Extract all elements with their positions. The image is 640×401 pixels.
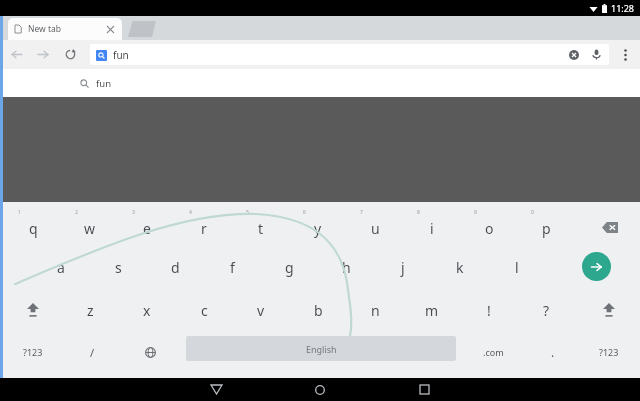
button[interactable]: .com [467, 332, 519, 372]
staticText: k [456, 258, 464, 277]
button[interactable]: 3 [121, 202, 173, 246]
staticText: d [171, 258, 180, 277]
staticText: 5 [246, 209, 249, 216]
button[interactable]: Shift [7, 288, 59, 332]
button[interactable]: n [349, 288, 401, 332]
staticText: 11:28 [611, 2, 635, 14]
staticText: t [258, 219, 264, 238]
button[interactable]: b [292, 288, 344, 332]
staticText: m [425, 301, 439, 320]
staticText: x [143, 301, 151, 320]
button[interactable]: 9 [463, 202, 515, 246]
button[interactable]: fun [90, 44, 609, 65]
staticText: p [542, 219, 551, 238]
button[interactable]: j [377, 246, 429, 288]
button[interactable]: x [121, 288, 173, 332]
staticText: 1 [18, 209, 21, 216]
staticText: English [306, 343, 337, 355]
button[interactable]: ? [520, 288, 572, 332]
button[interactable]: ! [463, 288, 515, 332]
staticText: ?123 [599, 346, 619, 358]
staticText: 9 [474, 209, 477, 216]
staticText: fun [96, 77, 112, 90]
staticText: .com [483, 346, 504, 358]
staticText: 7 [360, 209, 363, 216]
staticText: 3 [132, 209, 135, 216]
staticText: a [57, 258, 65, 277]
button[interactable]: h [320, 246, 372, 288]
button[interactable]: . [527, 332, 579, 372]
staticText: 4 [189, 209, 192, 216]
staticText: ?123 [23, 346, 43, 358]
button[interactable]: g [263, 246, 315, 288]
button[interactable]: Reload [62, 46, 79, 63]
button[interactable]: l [491, 246, 543, 288]
button[interactable]: / [66, 332, 118, 372]
button[interactable]: Back [184, 378, 248, 401]
button[interactable]: Back [8, 46, 25, 63]
staticText: ! [487, 301, 491, 320]
button[interactable]: 7 [349, 202, 401, 246]
button[interactable]: fun [0, 69, 640, 97]
staticText: z [87, 301, 94, 320]
button[interactable]: c [178, 288, 230, 332]
button[interactable]: 6 [292, 202, 344, 246]
staticText: n [371, 301, 380, 320]
button[interactable]: m [406, 288, 458, 332]
button[interactable]: 5 [235, 202, 287, 246]
staticText: l [515, 258, 519, 277]
button[interactable]: ?123 [583, 332, 635, 372]
staticText: 2 [75, 209, 78, 216]
staticText: w [84, 219, 96, 238]
staticText: 8 [417, 209, 420, 216]
button[interactable]: Change language [124, 332, 176, 372]
staticText: g [285, 258, 294, 277]
button[interactable]: k [434, 246, 486, 288]
button[interactable]: 0 [520, 202, 572, 246]
staticText: y [314, 219, 322, 238]
staticText: fun [113, 48, 129, 62]
staticText: q [29, 219, 38, 238]
staticText: 0 [531, 209, 534, 216]
staticText: h [342, 258, 351, 277]
button[interactable]: z [64, 288, 116, 332]
staticText: s [115, 258, 122, 277]
button[interactable]: a [35, 246, 87, 288]
button[interactable]: English [186, 336, 456, 361]
staticText: / [90, 345, 95, 360]
button[interactable]: Forward [35, 46, 52, 63]
button[interactable]: Clear [566, 47, 581, 62]
button[interactable]: ?123 [7, 332, 59, 372]
button[interactable]: Close tab [105, 24, 116, 35]
button[interactable]: Home [288, 378, 352, 401]
staticText: 6 [303, 209, 306, 216]
button[interactable]: Enter [582, 252, 611, 281]
staticText: New tab [28, 23, 62, 35]
button[interactable]: d [149, 246, 201, 288]
staticText: b [314, 301, 323, 320]
staticText: e [143, 219, 151, 238]
button[interactable]: 2 [64, 202, 116, 246]
staticText: c [201, 301, 208, 320]
button[interactable]: 8 [406, 202, 458, 246]
button[interactable]: Shift [583, 288, 635, 332]
button[interactable]: More options [616, 46, 634, 64]
button[interactable]: 1 [7, 202, 59, 246]
staticText: r [201, 219, 207, 238]
button[interactable]: New tab [8, 18, 122, 40]
staticText: i [430, 219, 434, 238]
button[interactable]: New tab [128, 21, 156, 37]
button[interactable]: Recent apps [392, 378, 456, 401]
button[interactable]: v [235, 288, 287, 332]
staticText: u [371, 219, 380, 238]
staticText: . [551, 344, 555, 360]
button[interactable]: s [92, 246, 144, 288]
button[interactable]: 4 [178, 202, 230, 246]
staticText: o [485, 219, 494, 238]
staticText: f [230, 258, 235, 277]
button[interactable]: Voice search [589, 47, 604, 62]
staticText: ? [543, 301, 550, 320]
button[interactable]: f [206, 246, 258, 288]
staticText: v [257, 301, 265, 320]
button[interactable]: Backspace [584, 202, 636, 246]
